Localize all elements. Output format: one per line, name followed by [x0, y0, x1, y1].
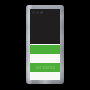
- button[interactable]: GET STARTED: [30, 63, 60, 72]
- staticText: GET STARTED: [36, 66, 55, 70]
- button[interactable]: More options: [40, 11, 43, 14]
- button[interactable]: Menu: [32, 11, 35, 14]
- button[interactable]: Search: [36, 11, 39, 14]
